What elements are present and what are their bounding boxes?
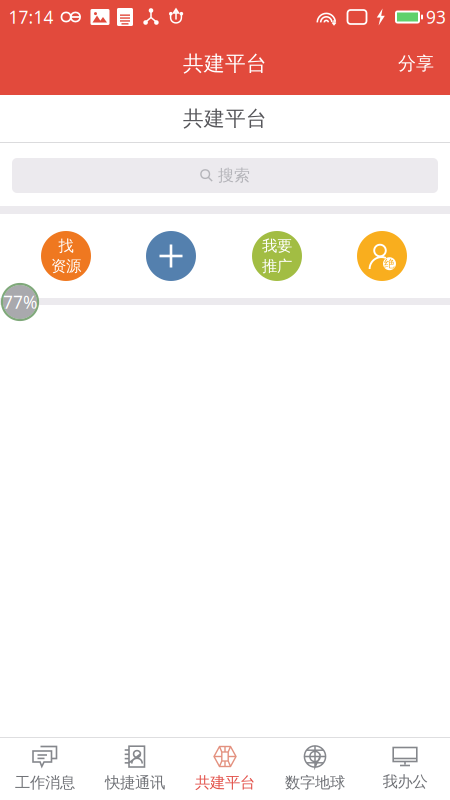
staticText: 共建平台 [195,773,255,792]
staticText: 共建平台 [183,50,267,76]
staticText: 我办公 [382,772,427,791]
staticText: 77% [3,290,37,314]
staticText: 推广 [262,256,292,276]
button[interactable]: 绝 [352,226,412,286]
button[interactable]: 找 [36,226,96,286]
staticText: 搜索 [218,165,250,186]
button[interactable]: 工作消息 [0,738,90,800]
button[interactable]: 数字地球 [270,738,360,800]
staticText: 分享 [398,52,434,75]
staticText: 我要 [262,236,292,255]
staticText: 工作消息 [15,773,75,792]
staticText: 93 [426,5,446,29]
button[interactable]: 快捷通讯 [90,738,180,800]
button[interactable]: 上传进度 77% [1,283,39,321]
staticText: 17:14 [8,5,53,29]
staticText: 共建平台 [183,105,267,131]
button[interactable]: 我要 [247,226,307,286]
staticText: 资源 [51,256,81,276]
button[interactable]: 分享 [382,32,450,95]
staticText: 找 [58,236,73,255]
staticText: 快捷通讯 [105,773,165,792]
staticText: 数字地球 [285,773,345,792]
staticText: 绝 [384,257,395,270]
button[interactable]: 我办公 [360,738,450,800]
button[interactable] [141,226,201,286]
button[interactable]: 共建平台 [180,738,270,800]
button[interactable]: 搜索 [0,158,450,193]
